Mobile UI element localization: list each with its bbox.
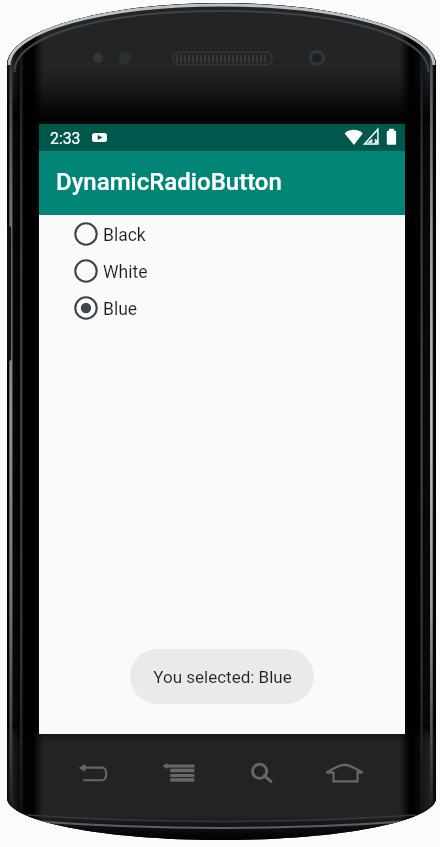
button[interactable]: Home xyxy=(317,750,377,802)
staticText: DynamicRadioButton xyxy=(56,168,282,196)
button[interactable]: Back xyxy=(63,750,123,802)
button[interactable]: Black xyxy=(74,215,405,252)
staticText: You selected: Blue xyxy=(153,667,292,687)
button[interactable]: Search xyxy=(232,750,292,802)
button[interactable]: Blue xyxy=(74,289,405,326)
button[interactable]: Menu xyxy=(148,750,208,802)
staticText: White xyxy=(103,262,148,283)
staticText: Black xyxy=(103,225,146,246)
button[interactable]: You selected: Blue xyxy=(130,649,314,704)
button[interactable]: White xyxy=(74,252,405,289)
staticText: Blue xyxy=(103,299,138,320)
staticText: 2:33 xyxy=(50,129,81,148)
